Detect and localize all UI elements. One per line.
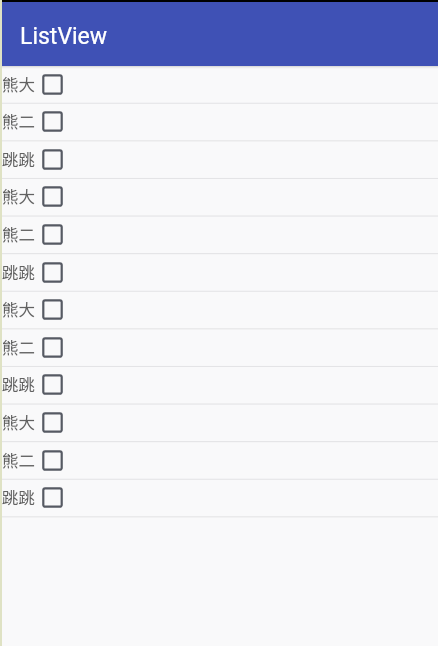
button[interactable]: 跳跳: [0, 254, 438, 292]
staticText: 熊二: [2, 448, 35, 472]
button[interactable]: 熊二: [0, 329, 438, 367]
staticText: 熊二: [2, 222, 35, 246]
staticText: 熊大: [2, 72, 35, 96]
button[interactable]: Toggle 跳跳: [42, 149, 63, 170]
button[interactable]: 跳跳: [0, 141, 438, 179]
button[interactable]: ListView: [0, 2, 438, 66]
staticText: 跳跳: [2, 485, 35, 509]
button[interactable]: Toggle 熊二: [42, 337, 63, 358]
button[interactable]: 熊二: [0, 442, 438, 480]
button[interactable]: Toggle 熊大: [42, 74, 63, 95]
staticText: 熊大: [2, 410, 35, 434]
button[interactable]: Toggle 熊大: [42, 299, 63, 320]
button[interactable]: 熊大: [0, 291, 438, 329]
button[interactable]: Toggle 熊二: [42, 450, 63, 471]
button[interactable]: Toggle 熊大: [42, 412, 63, 433]
button[interactable]: 跳跳: [0, 366, 438, 404]
staticText: 熊二: [2, 335, 35, 359]
staticText: 熊二: [2, 109, 35, 133]
button[interactable]: 熊二: [0, 216, 438, 254]
button[interactable]: Toggle 跳跳: [42, 262, 63, 283]
button[interactable]: Toggle 熊大: [42, 186, 63, 207]
staticText: 熊大: [2, 184, 35, 208]
staticText: ListView: [20, 23, 108, 50]
button[interactable]: 熊大: [0, 404, 438, 442]
staticText: 跳跳: [2, 147, 35, 171]
staticText: 跳跳: [2, 372, 35, 396]
button[interactable]: Toggle 跳跳: [42, 374, 63, 395]
staticText: 熊大: [2, 297, 35, 321]
button[interactable]: Toggle 熊二: [42, 224, 63, 245]
button[interactable]: 熊大: [0, 178, 438, 216]
staticText: 跳跳: [2, 260, 35, 284]
button[interactable]: 熊二: [0, 103, 438, 141]
button[interactable]: Toggle 熊二: [42, 111, 63, 132]
button[interactable]: 跳跳: [0, 479, 438, 517]
button[interactable]: 熊大: [0, 66, 438, 104]
button[interactable]: Toggle 跳跳: [42, 487, 63, 508]
